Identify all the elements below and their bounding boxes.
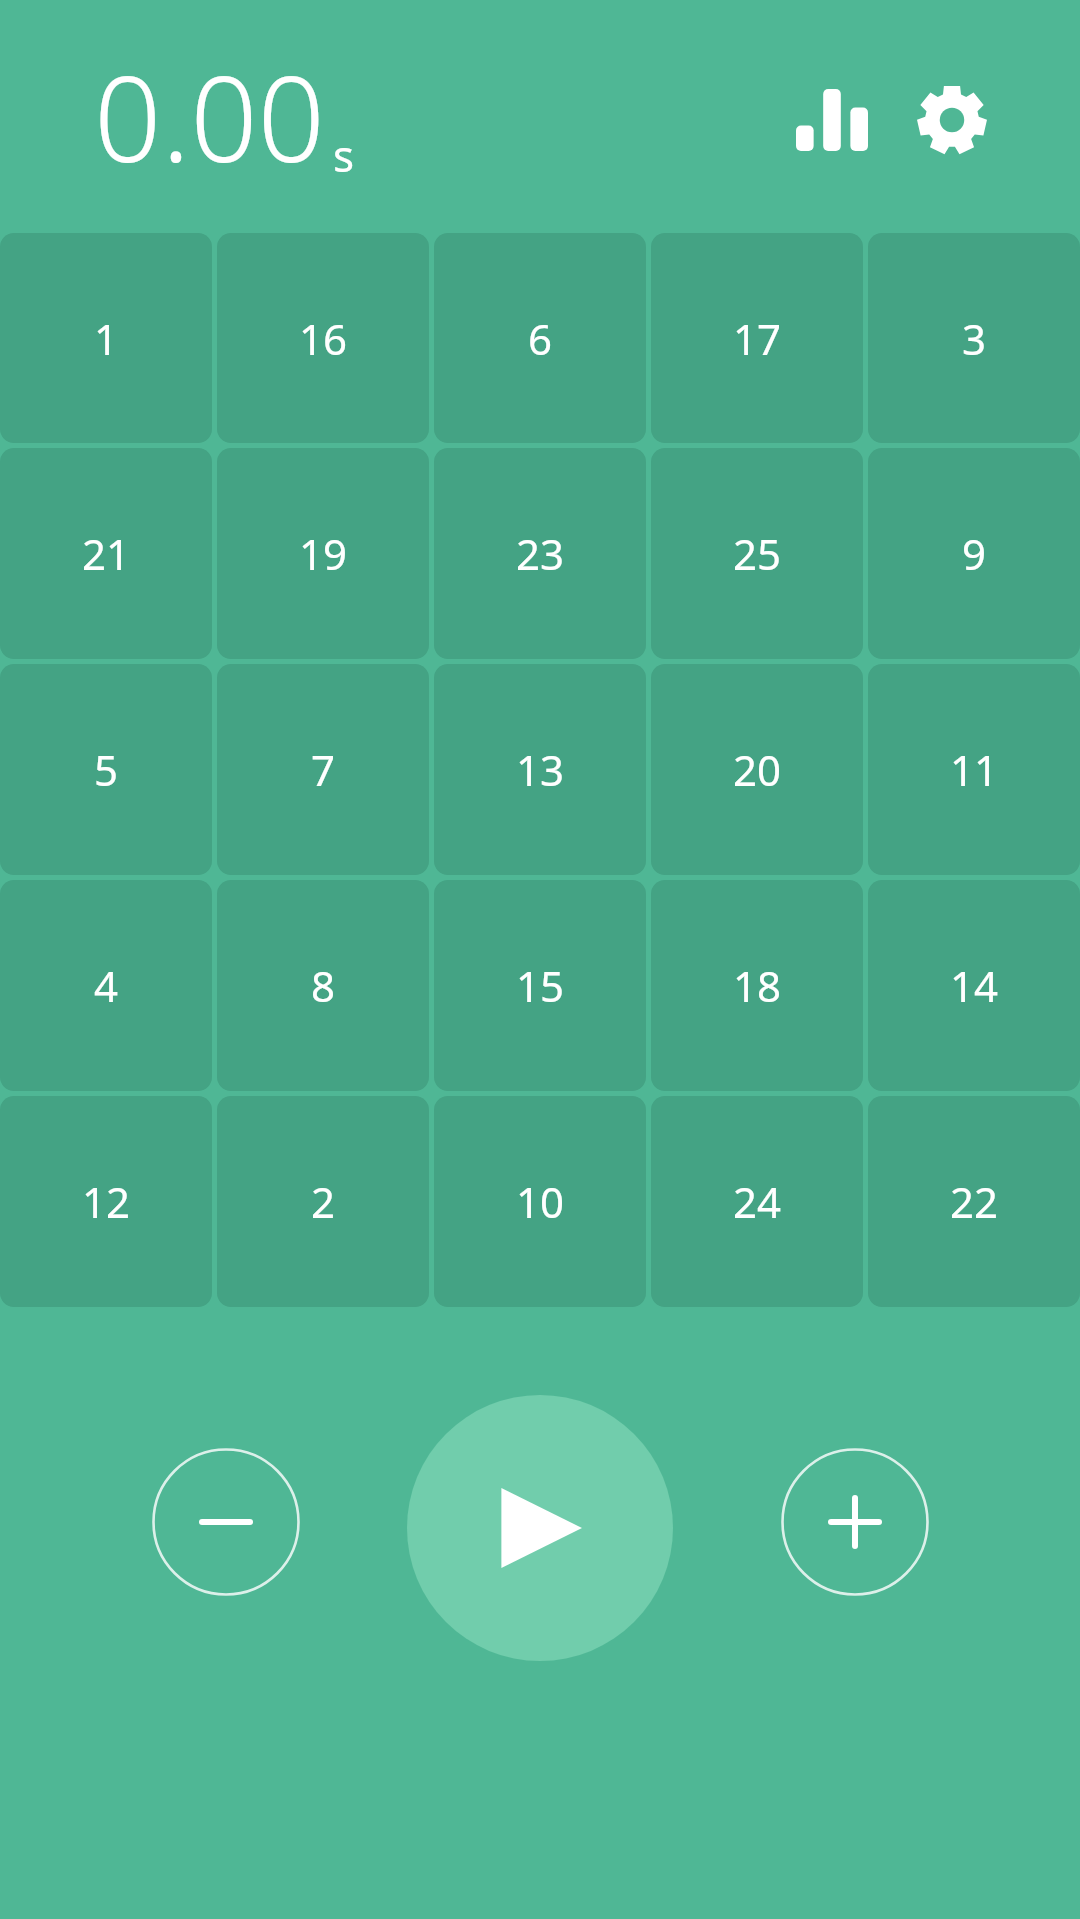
button[interactable]: 18: [651, 880, 863, 1091]
button[interactable]: Settings: [902, 70, 1002, 170]
staticText: 15: [516, 957, 565, 1014]
button[interactable]: 1: [0, 233, 212, 443]
button[interactable]: Statistics: [782, 70, 882, 170]
staticText: 19: [299, 525, 348, 582]
button[interactable]: 15: [434, 880, 646, 1091]
button[interactable]: 9: [868, 448, 1080, 659]
button[interactable]: 22: [868, 1096, 1080, 1307]
button[interactable]: 16: [217, 233, 429, 443]
button[interactable]: 23: [434, 448, 646, 659]
button[interactable]: 12: [0, 1096, 212, 1307]
button[interactable]: 11: [868, 664, 1080, 875]
staticText: 13: [516, 741, 565, 798]
button[interactable]: Decrease: [152, 1448, 300, 1596]
staticText: 16: [299, 310, 348, 367]
button[interactable]: 21: [0, 448, 212, 659]
staticText: s: [333, 125, 355, 185]
button[interactable]: 5: [0, 664, 212, 875]
staticText: 11: [950, 741, 999, 798]
button[interactable]: 19: [217, 448, 429, 659]
staticText: 23: [516, 525, 565, 582]
staticText: 21: [82, 525, 131, 582]
button[interactable]: Start: [407, 1395, 673, 1661]
staticText: 3: [962, 310, 987, 367]
staticText: 2: [311, 1173, 336, 1230]
button[interactable]: 4: [0, 880, 212, 1091]
staticText: 10: [516, 1173, 565, 1230]
button[interactable]: 14: [868, 880, 1080, 1091]
staticText: 25: [733, 525, 782, 582]
staticText: 0.00: [94, 36, 325, 197]
staticText: 9: [962, 525, 987, 582]
staticText: 1: [94, 310, 119, 367]
staticText: 14: [950, 957, 999, 1014]
staticText: 17: [733, 310, 782, 367]
staticText: 8: [311, 957, 336, 1014]
button[interactable]: 3: [868, 233, 1080, 443]
staticText: 18: [733, 957, 782, 1014]
button[interactable]: 13: [434, 664, 646, 875]
staticText: 12: [82, 1173, 131, 1230]
button[interactable]: 25: [651, 448, 863, 659]
button[interactable]: Increase: [781, 1448, 929, 1596]
staticText: 6: [528, 310, 553, 367]
button[interactable]: 17: [651, 233, 863, 443]
button[interactable]: 8: [217, 880, 429, 1091]
staticText: 20: [733, 741, 782, 798]
staticText: 4: [94, 957, 119, 1014]
staticText: 7: [311, 741, 336, 798]
staticText: 22: [950, 1173, 999, 1230]
button[interactable]: 24: [651, 1096, 863, 1307]
button[interactable]: 2: [217, 1096, 429, 1307]
button[interactable]: 20: [651, 664, 863, 875]
button[interactable]: 6: [434, 233, 646, 443]
button[interactable]: 10: [434, 1096, 646, 1307]
button[interactable]: 7: [217, 664, 429, 875]
staticText: 24: [733, 1173, 782, 1230]
staticText: 5: [94, 741, 119, 798]
